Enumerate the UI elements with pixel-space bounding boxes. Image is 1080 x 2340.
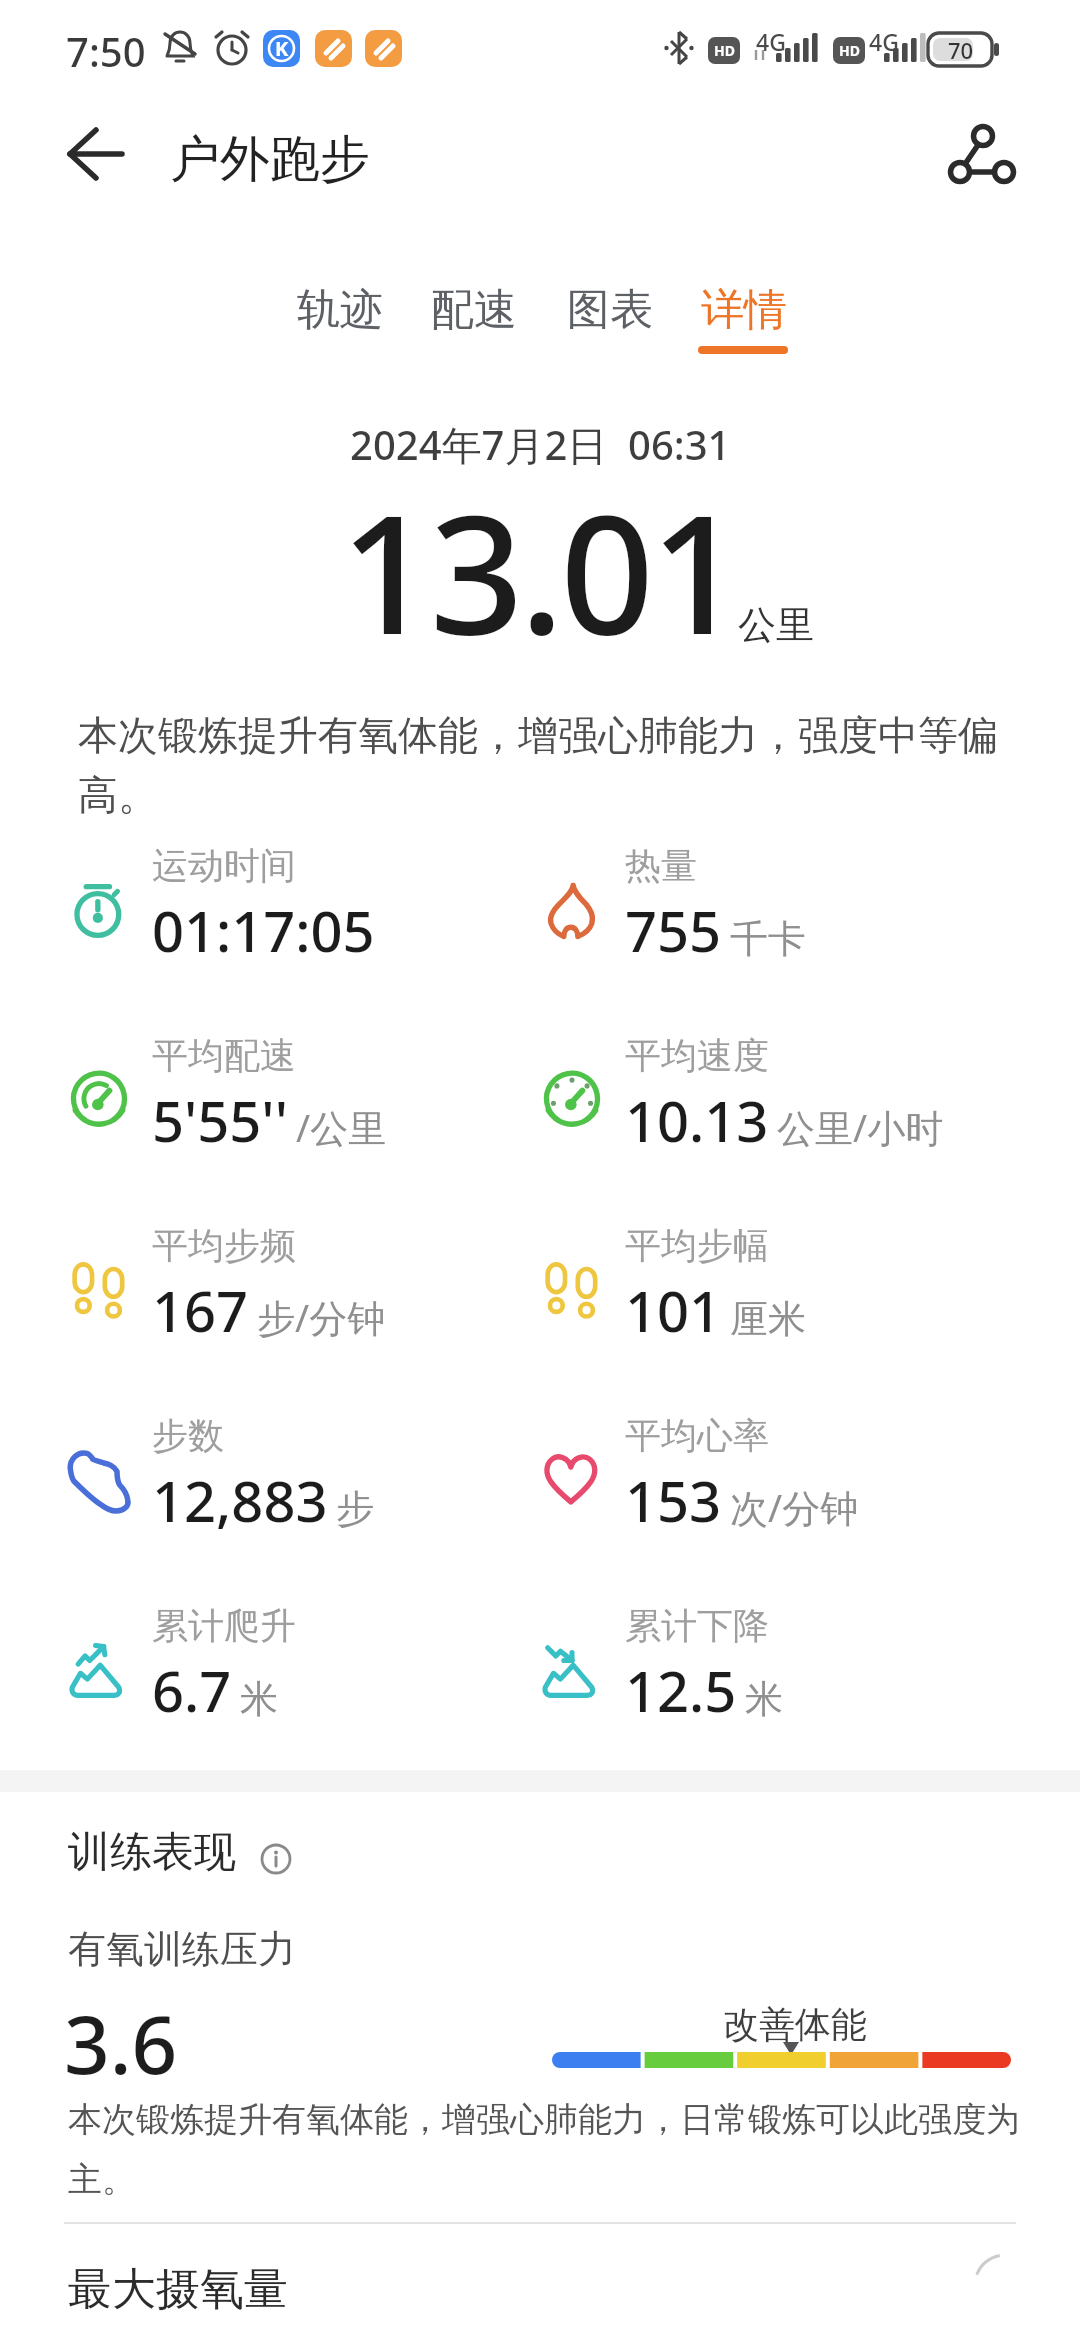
staticText: 10.13 bbox=[625, 1082, 769, 1158]
staticText: 平均速度 bbox=[625, 1033, 769, 1078]
staticText: 累计爬升 bbox=[152, 1603, 296, 1648]
staticText: 平均配速 bbox=[152, 1033, 296, 1078]
staticText: 12,883 bbox=[152, 1462, 328, 1538]
staticText: HD bbox=[839, 41, 860, 60]
staticText: 7:50 bbox=[66, 24, 146, 78]
staticText: 米 bbox=[745, 1675, 783, 1723]
staticText: 平均步幅 bbox=[625, 1223, 769, 1268]
button[interactable] bbox=[56, 120, 136, 190]
staticText: 01:17:05 bbox=[152, 892, 375, 968]
staticText: 4G bbox=[756, 26, 786, 57]
staticText: 70 bbox=[948, 35, 974, 65]
staticText: 轨迹 bbox=[297, 283, 383, 337]
staticText: 详情 bbox=[701, 283, 787, 337]
staticText: 运动时间 bbox=[152, 843, 296, 888]
button[interactable]: 详情 bbox=[674, 275, 814, 345]
staticText: 图表 bbox=[567, 283, 653, 337]
staticText: 米 bbox=[240, 1675, 278, 1723]
staticText: 千卡 bbox=[730, 915, 806, 963]
staticText: 步 bbox=[336, 1485, 374, 1533]
staticText: 本次锻炼提升有氧体能，增强心肺能力，日常锻炼可以此强度为 主。 bbox=[68, 2098, 1020, 2201]
staticText: 厘米 bbox=[730, 1295, 806, 1343]
staticText: K bbox=[275, 35, 289, 62]
staticText: 公里 bbox=[738, 601, 814, 649]
staticText: 步/分钟 bbox=[257, 1291, 386, 1343]
staticText: 训练表现 bbox=[68, 1826, 236, 1879]
staticText: 6.7 bbox=[152, 1652, 232, 1728]
staticText: 次/分钟 bbox=[730, 1481, 859, 1533]
staticText: 13.01 bbox=[340, 459, 740, 682]
button[interactable]: 配速 bbox=[404, 275, 544, 345]
staticText: 755 bbox=[625, 892, 722, 968]
staticText: HD bbox=[714, 41, 735, 60]
staticText: 4G bbox=[869, 26, 899, 57]
staticText: 167 bbox=[152, 1272, 249, 1348]
staticText: 5'55'' bbox=[152, 1082, 288, 1158]
staticText: 2024年7月2日 06:31 bbox=[350, 417, 731, 472]
staticText: /公里 bbox=[296, 1101, 387, 1153]
staticText: 热量 bbox=[625, 843, 697, 888]
staticText: 12.5 bbox=[625, 1652, 737, 1728]
button[interactable]: 图表 bbox=[540, 275, 680, 345]
staticText: 平均心率 bbox=[625, 1413, 769, 1458]
staticText: 步数 bbox=[152, 1413, 224, 1458]
staticText: 累计下降 bbox=[625, 1603, 769, 1648]
staticText: 配速 bbox=[431, 283, 517, 337]
button[interactable]: 轨迹 bbox=[270, 275, 410, 345]
staticText: 本次锻炼提升有氧体能，增强心肺能力，强度中等偏 高。 bbox=[78, 710, 998, 821]
staticText: 有氧训练压力 bbox=[68, 1925, 296, 1973]
staticText: 最大摄氧量 bbox=[68, 2262, 288, 2317]
button[interactable] bbox=[938, 118, 1028, 193]
staticText: 公里/小时 bbox=[777, 1101, 944, 1153]
staticText: 平均步频 bbox=[152, 1223, 296, 1268]
staticText: 户外跑步 bbox=[170, 128, 370, 191]
staticText: 改善体能 bbox=[723, 2002, 867, 2047]
staticText: 3.6 bbox=[64, 1988, 178, 2097]
staticText: 153 bbox=[625, 1462, 722, 1538]
button[interactable] bbox=[254, 1837, 298, 1881]
staticText: 101 bbox=[625, 1272, 722, 1348]
